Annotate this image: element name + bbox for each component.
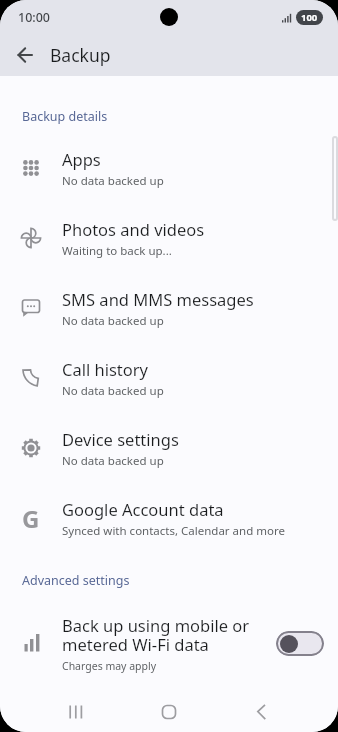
button[interactable] <box>46 692 106 732</box>
staticText: Backup <box>50 43 111 67</box>
staticText: Synced with contacts, Calendar and more <box>62 523 285 539</box>
staticText: Photos and videos <box>62 218 205 240</box>
staticText: Call history <box>62 358 149 380</box>
staticText: Waiting to back up... <box>62 243 172 259</box>
button[interactable]: Device settings <box>0 413 338 483</box>
staticText: Advanced settings <box>22 572 130 589</box>
staticText: G <box>22 502 40 535</box>
button[interactable]: Back up using mobile or metered Wi-Fi da… <box>0 603 338 683</box>
button[interactable]: Apps <box>0 133 338 203</box>
button[interactable]: SMS and MMS messages <box>0 273 338 343</box>
staticText: 100 <box>301 11 318 24</box>
button[interactable]: Photos and videos <box>0 203 338 273</box>
staticText: Device settings <box>62 428 179 450</box>
button[interactable] <box>14 44 36 66</box>
staticText: No data backed up <box>62 453 164 469</box>
staticText: SMS and MMS messages <box>62 288 254 310</box>
staticText: Google Account data <box>62 498 224 520</box>
button[interactable] <box>232 692 292 732</box>
staticText: No data backed up <box>62 313 164 329</box>
button[interactable]: G <box>0 483 338 553</box>
staticText: No data backed up <box>62 383 164 399</box>
staticText: No data backed up <box>62 173 164 189</box>
staticText: Apps <box>62 148 101 170</box>
button[interactable] <box>276 631 324 656</box>
staticText: 10:00 <box>18 9 51 26</box>
staticText: Charges may apply <box>62 659 157 673</box>
staticText: Back up using mobile or metered Wi-Fi da… <box>62 614 250 656</box>
staticText: Backup details <box>22 108 108 125</box>
button[interactable] <box>139 692 199 732</box>
button[interactable]: Call history <box>0 343 338 413</box>
